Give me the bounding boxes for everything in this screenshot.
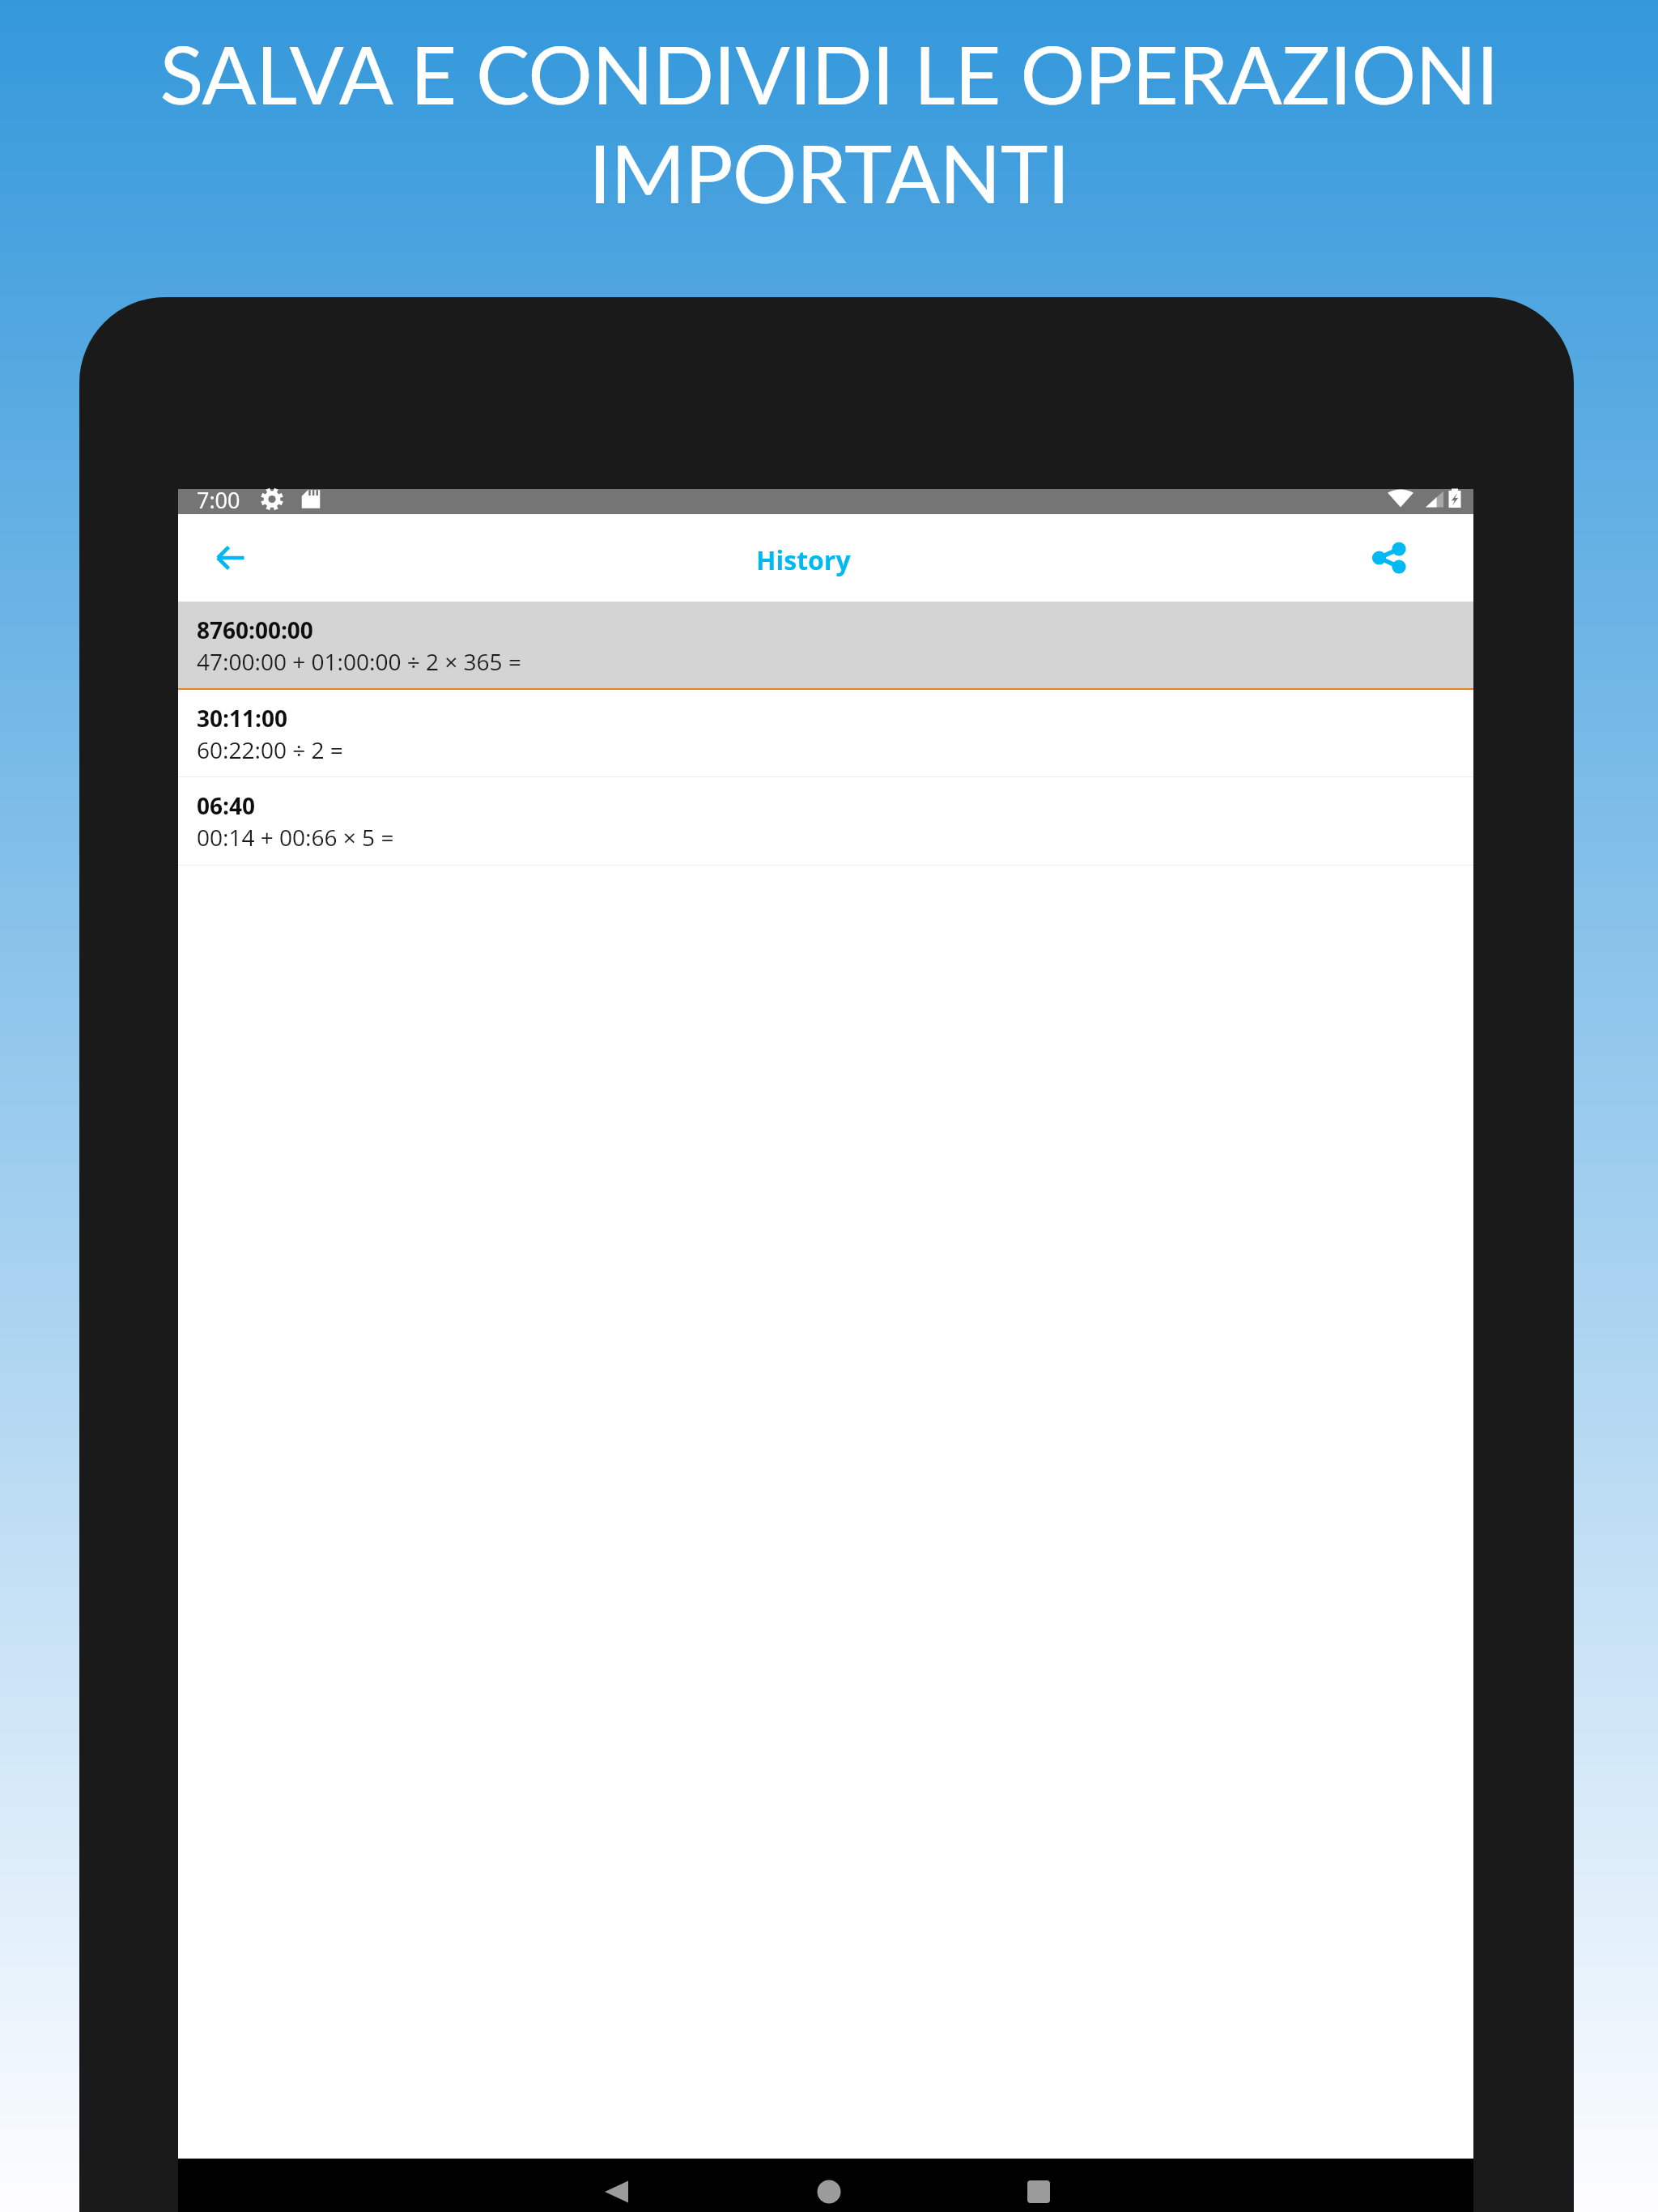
button[interactable]: 8760:00:00	[178, 602, 1473, 690]
button[interactable]: Home	[802, 2159, 856, 2212]
staticText: 30:11:00	[197, 703, 287, 734]
staticText: 00:14 + 00:66 × 5 =	[197, 822, 394, 853]
staticText: SALVA E CONDIVIDI LE OPERAZIONI IMPORTAN…	[0, 25, 1658, 220]
staticText: 06:40	[197, 790, 255, 821]
button[interactable]: 30:11:00	[178, 690, 1473, 777]
button[interactable]: 06:40	[178, 777, 1473, 866]
button[interactable]: Recent apps	[1012, 2159, 1065, 2212]
staticText: 60:22:00 ÷ 2 =	[197, 734, 343, 765]
staticText: 47:00:00 + 01:00:00 ÷ 2 × 365 =	[197, 646, 521, 677]
button[interactable]: Back	[202, 529, 260, 587]
button[interactable]: Back	[589, 2159, 643, 2212]
button[interactable]: Share	[1361, 528, 1419, 586]
staticText: 8760:00:00	[197, 615, 313, 645]
staticText: History	[756, 542, 851, 578]
staticText: 7:00	[197, 485, 240, 510]
